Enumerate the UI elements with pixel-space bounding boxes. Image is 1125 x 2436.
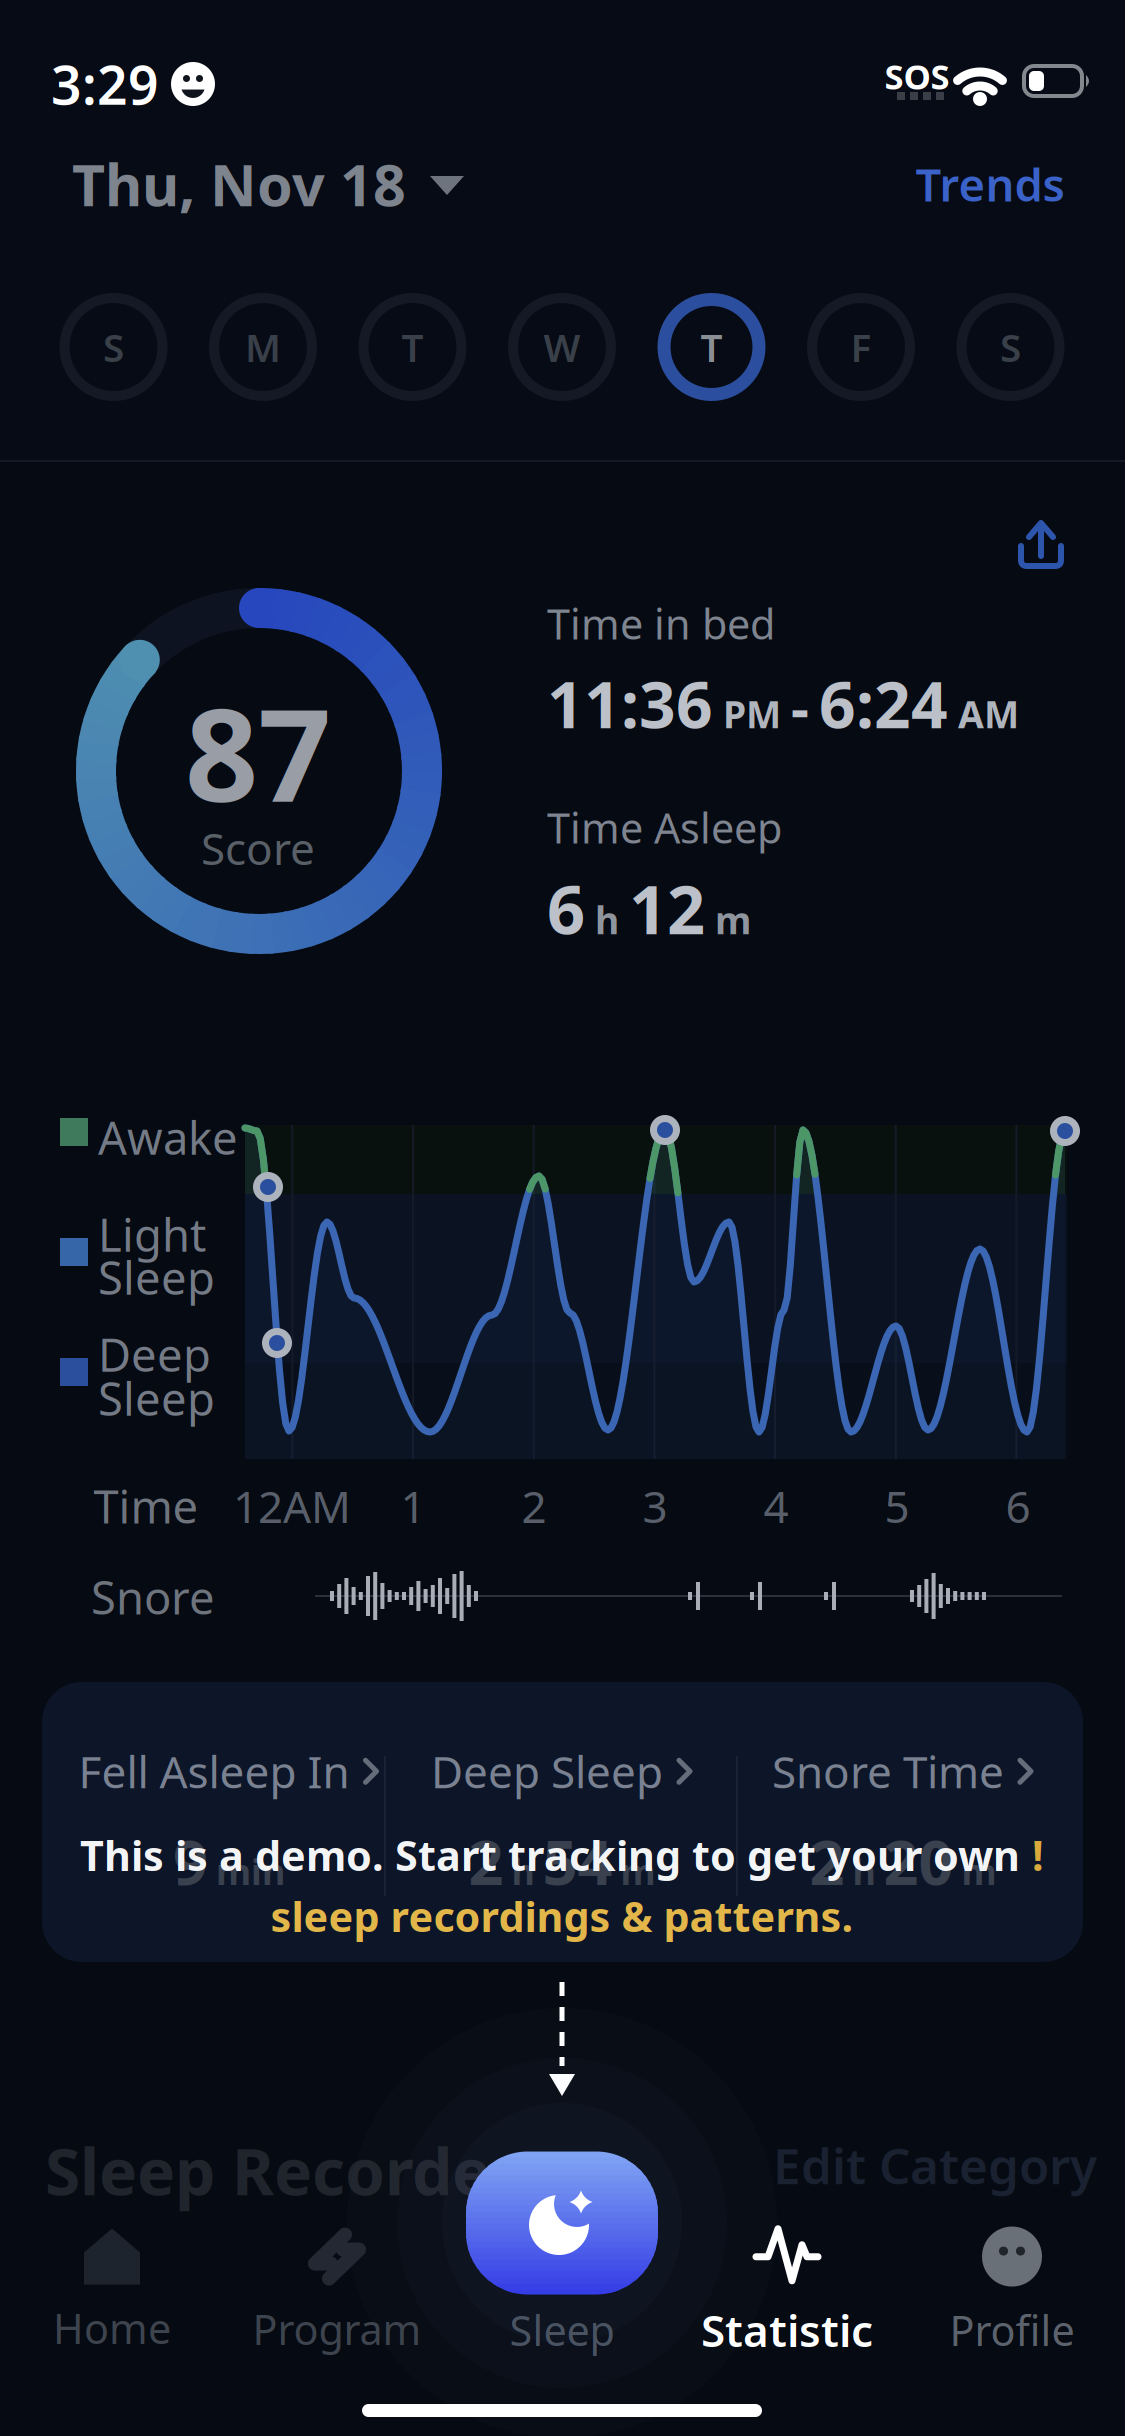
staticText: 4	[763, 1477, 788, 1535]
staticText: 87	[185, 667, 331, 837]
staticText: Sleep	[98, 1247, 215, 1307]
staticText: h	[595, 895, 619, 944]
staticText: 3:29	[51, 49, 159, 119]
staticText: Profile	[949, 2303, 1074, 2357]
staticText: Home	[53, 2301, 171, 2355]
staticText: S	[103, 321, 124, 373]
staticText: -	[791, 669, 809, 744]
staticText: Snore	[91, 1567, 215, 1627]
staticText: Light	[98, 1204, 206, 1264]
staticText: Trends	[915, 154, 1064, 214]
staticText: 9	[173, 1820, 208, 1902]
button[interactable]: S	[956, 293, 1064, 401]
button[interactable]: T	[657, 293, 765, 401]
staticText: T	[401, 321, 423, 373]
staticText: m	[961, 1847, 996, 1895]
staticText: Score	[201, 819, 315, 877]
button[interactable]: Fell Asleep In	[78, 1742, 379, 1902]
staticText: 12AM	[233, 1477, 351, 1535]
staticText: This is a demo. Start tracking to get yo…	[80, 1828, 1020, 1882]
staticText: 1	[400, 1477, 425, 1535]
staticText: 2	[468, 1820, 503, 1902]
staticText: SOS	[884, 53, 949, 99]
staticText: 12	[629, 864, 705, 952]
staticText: Program	[252, 2302, 421, 2356]
staticText: Time in bed	[547, 596, 775, 651]
staticText: 6:24	[819, 661, 948, 746]
staticText: 2	[521, 1477, 546, 1535]
staticText: W	[543, 321, 580, 373]
staticText: S	[1000, 321, 1021, 373]
staticText: Deep Sleep	[431, 1742, 663, 1800]
staticText: 5	[884, 1477, 909, 1535]
staticText: 3	[642, 1477, 667, 1535]
staticText: 11:36	[547, 661, 713, 746]
button[interactable]: F	[807, 293, 915, 401]
button[interactable]: Snore Time	[772, 1742, 1034, 1902]
button[interactable]: Thu, Nov 18	[72, 146, 464, 222]
button[interactable]: Trends	[915, 154, 1064, 214]
button[interactable]	[466, 2151, 658, 2294]
button[interactable]: Edit Category	[773, 2132, 1097, 2198]
staticText: M	[245, 321, 281, 373]
button[interactable]: Home	[53, 2229, 171, 2355]
staticText: AM	[958, 689, 1019, 739]
staticText: Time Asleep	[547, 800, 782, 855]
staticText: Sleep Recorder	[45, 2128, 519, 2213]
staticText: T	[700, 321, 722, 373]
button[interactable]: Deep Sleep	[431, 1742, 693, 1902]
staticText: 6	[1005, 1477, 1030, 1535]
button[interactable]: Program	[252, 2228, 421, 2356]
staticText: Sleep	[98, 1368, 215, 1428]
staticText: m	[620, 1847, 655, 1895]
button[interactable]: Statistic	[701, 2225, 873, 2359]
staticText: !	[1032, 1828, 1044, 1882]
staticText: Time	[93, 1476, 198, 1536]
button[interactable]: W	[508, 293, 616, 401]
staticText: Statistic	[701, 2301, 873, 2359]
staticText: h	[511, 1847, 534, 1895]
button[interactable]	[1013, 517, 1069, 573]
staticText: Thu, Nov 18	[72, 146, 406, 222]
staticText: PM	[723, 689, 781, 739]
staticText: Awake	[98, 1107, 238, 1167]
staticText: F	[850, 321, 871, 373]
staticText: Deep	[98, 1324, 211, 1384]
staticText: 20	[883, 1820, 953, 1902]
staticText: sleep recordings & patterns.	[270, 1889, 853, 1943]
button[interactable]: Profile	[949, 2227, 1074, 2357]
staticText: 54	[542, 1820, 612, 1902]
staticText: h	[852, 1847, 875, 1895]
staticText: 2	[809, 1820, 844, 1902]
staticText: Sleep	[509, 2303, 614, 2357]
staticText: 6	[547, 864, 585, 952]
staticText: min	[216, 1847, 285, 1895]
staticText: Fell Asleep In	[78, 1742, 349, 1800]
button[interactable]: T	[358, 293, 466, 401]
staticText: Snore Time	[772, 1742, 1004, 1800]
button[interactable]: M	[209, 293, 317, 401]
staticText: m	[715, 895, 751, 944]
staticText: Edit Category	[773, 2132, 1097, 2198]
button[interactable]: S	[59, 293, 167, 401]
